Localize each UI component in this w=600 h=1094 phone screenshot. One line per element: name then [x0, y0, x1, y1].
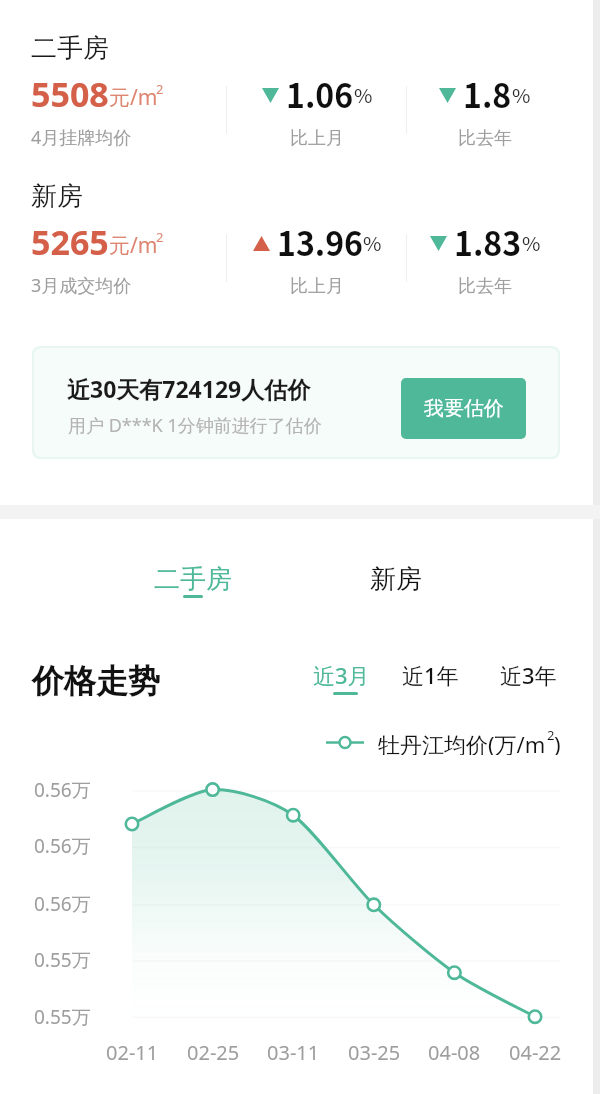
staticText: 02-25: [187, 1039, 240, 1066]
other: 下跌: [430, 218, 447, 262]
staticText: 1.06: [286, 71, 354, 115]
staticText: 03-11: [267, 1039, 320, 1066]
staticText: 二手房: [154, 563, 232, 596]
staticText: 5508: [31, 71, 109, 117]
staticText: 用户 D***K 1分钟前进行了估价: [68, 413, 322, 438]
button[interactable]: 新房: [348, 562, 444, 608]
staticText: 04-22: [509, 1039, 562, 1066]
button[interactable]: 近3年: [500, 660, 562, 696]
button[interactable]: 上涨: [237, 218, 397, 262]
button[interactable]: 牡丹江均价(万/m: [326, 729, 494, 755]
button[interactable]: 我要估价: [401, 378, 526, 439]
staticText: 5265: [31, 219, 109, 265]
staticText: 新房: [31, 180, 83, 213]
staticText: 近3年: [500, 660, 557, 690]
staticText: 0.55万: [34, 947, 91, 973]
button[interactable]: 下跌: [237, 70, 397, 114]
button[interactable]: 近3月: [313, 660, 375, 696]
staticText: 二手房: [31, 32, 109, 65]
staticText: 比上月: [290, 275, 344, 298]
other: 下跌: [439, 70, 456, 114]
staticText: 比上月: [290, 127, 344, 150]
staticText: 元/m: [109, 231, 158, 260]
other: 下跌: [262, 70, 279, 114]
button[interactable]: 下跌: [405, 218, 565, 262]
staticText: 3月成交均价: [31, 273, 132, 298]
staticText: 近3月: [313, 660, 370, 690]
staticText: 0.55万: [34, 1004, 91, 1030]
staticText: 新房: [370, 563, 422, 596]
staticText: 我要估价: [424, 396, 504, 421]
staticText: 04-08: [428, 1039, 481, 1066]
staticText: 元/m: [109, 83, 158, 112]
staticText: 02-11: [106, 1039, 159, 1066]
staticText: %: [354, 80, 373, 109]
staticText: 2: [156, 228, 164, 246]
button[interactable]: 下跌: [405, 70, 565, 114]
button[interactable]: 近1年: [402, 660, 464, 696]
staticText: 0.56万: [34, 891, 91, 917]
staticText: 2: [547, 726, 555, 744]
staticText: 4月挂牌均价: [31, 125, 132, 150]
staticText: 近1年: [402, 660, 459, 690]
staticText: ): [554, 729, 561, 755]
staticText: 1.83: [454, 219, 522, 263]
staticText: 牡丹江均价(万/m: [378, 729, 546, 755]
button[interactable]: 二手房: [145, 562, 241, 608]
staticText: 2: [156, 80, 164, 98]
staticText: 03-25: [348, 1039, 401, 1066]
staticText: %: [363, 228, 382, 257]
staticText: %: [522, 228, 541, 257]
button[interactable]: 近30天有724129人估价: [34, 348, 558, 457]
staticText: 近30天有724129人估价: [67, 373, 311, 404]
other: 上涨: [253, 218, 270, 262]
staticText: 13.96: [277, 219, 363, 263]
staticText: %: [512, 80, 531, 109]
staticText: 价格走势: [32, 661, 160, 701]
staticText: 0.56万: [34, 833, 91, 859]
staticText: 比去年: [458, 275, 512, 298]
staticText: 1.8: [463, 71, 512, 115]
staticText: 0.56万: [34, 777, 91, 803]
staticText: 比去年: [458, 127, 512, 150]
